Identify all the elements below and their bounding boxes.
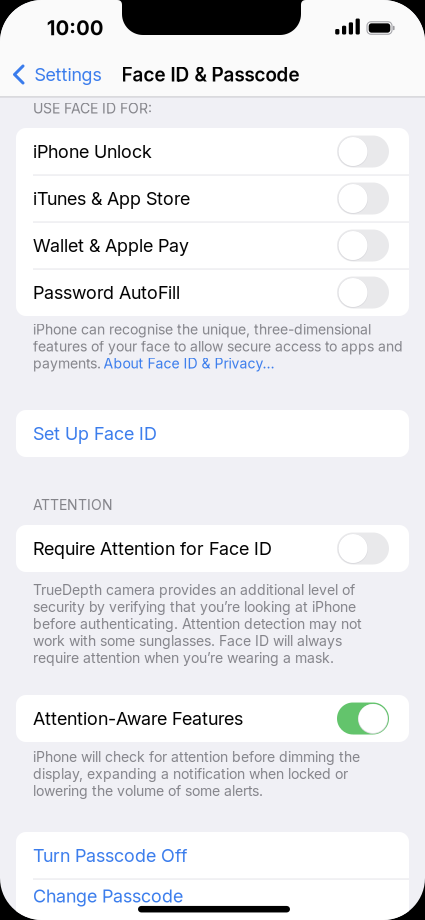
staticText: before authenticating. Attention detecti… xyxy=(33,616,362,632)
staticText: iPhone will check for attention before d… xyxy=(33,749,360,765)
staticText: security by verifying that you’re lookin… xyxy=(33,599,356,615)
staticText: Wallet & Apple Pay xyxy=(33,235,189,256)
staticText: Require Attention for Face ID xyxy=(33,538,272,559)
staticText: lowering the volume of some alerts. xyxy=(33,783,263,799)
button[interactable]: iPhone Unlock xyxy=(16,128,409,175)
staticText: 10:00 xyxy=(47,16,103,40)
staticText: Password AutoFill xyxy=(33,282,180,303)
staticText: Settings xyxy=(34,64,101,85)
button[interactable]: Wallet & Apple Pay xyxy=(16,222,409,269)
staticText: Turn Passcode Off xyxy=(33,845,187,866)
staticText: iPhone can recognise the unique, three-d… xyxy=(33,321,371,338)
staticText: payments. xyxy=(33,355,101,372)
button[interactable]: Settings xyxy=(12,54,132,94)
button[interactable]: Change Passcode xyxy=(16,872,409,919)
staticText: Attention-Aware Features xyxy=(33,708,243,729)
staticText: work with some sunglasses. Face ID will … xyxy=(33,633,342,649)
staticText: Face ID & Passcode xyxy=(121,63,299,86)
staticText: features of your face to allow secure ac… xyxy=(33,338,403,355)
button[interactable]: About Face ID & Privacy… xyxy=(103,354,279,372)
staticText: require attention when you’re wearing a … xyxy=(33,650,334,666)
staticText: USE FACE ID FOR: xyxy=(33,100,152,117)
button[interactable]: Require Attention for Face ID xyxy=(16,525,409,572)
staticText: iPhone Unlock xyxy=(33,141,152,162)
button[interactable]: Set Up Face ID xyxy=(16,410,409,457)
staticText: TrueDepth camera provides an additional … xyxy=(33,582,355,598)
button[interactable]: Turn Passcode Off xyxy=(16,832,409,879)
staticText: ATTENTION xyxy=(33,497,113,513)
button[interactable]: iTunes & App Store xyxy=(16,175,409,222)
staticText: About Face ID & Privacy… xyxy=(103,355,274,372)
staticText: iTunes & App Store xyxy=(33,188,190,209)
staticText: Set Up Face ID xyxy=(33,423,157,444)
staticText: display, expanding a notification when l… xyxy=(33,766,348,782)
button[interactable]: Attention-Aware Features xyxy=(16,695,409,742)
staticText: Change Passcode xyxy=(33,885,183,907)
button[interactable]: Password AutoFill xyxy=(16,269,409,316)
